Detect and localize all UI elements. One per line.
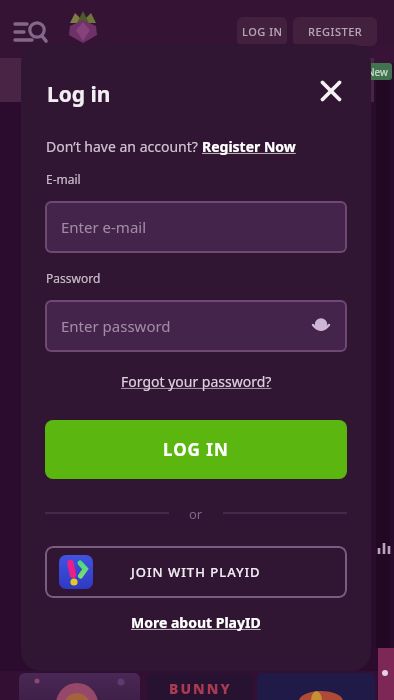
staticText: or (189, 505, 203, 521)
staticText: JOIN WITH PLAYID (131, 563, 261, 581)
staticText: LOG IN (242, 24, 283, 39)
button[interactable]: Forgot your password? (121, 372, 272, 391)
staticText: E-mail (46, 171, 81, 187)
staticText: REGISTER (308, 24, 363, 39)
button[interactable]: LOG IN (45, 420, 347, 479)
button[interactable]: Enter password (45, 300, 347, 352)
button[interactable]: More about PlayID (131, 613, 261, 632)
button[interactable]: Enter e-mail (45, 201, 347, 253)
staticText: Enter e-mail (61, 217, 147, 237)
staticText: Enter password (61, 316, 171, 336)
button[interactable] (319, 79, 343, 103)
button[interactable] (311, 316, 331, 336)
staticText: BUNNY (169, 679, 232, 698)
button[interactable]: JOIN WITH PLAYID (45, 546, 347, 598)
staticText: LOG IN (163, 438, 229, 461)
button[interactable]: Register Now (202, 137, 296, 156)
staticText: New (367, 65, 388, 79)
staticText: Password (46, 270, 101, 286)
staticText: Don’t have an account? (46, 137, 202, 156)
button[interactable]: REGISTER (293, 17, 377, 46)
button[interactable] (14, 18, 50, 46)
button[interactable]: LOG IN (237, 17, 287, 46)
staticText: Log in (47, 80, 111, 109)
